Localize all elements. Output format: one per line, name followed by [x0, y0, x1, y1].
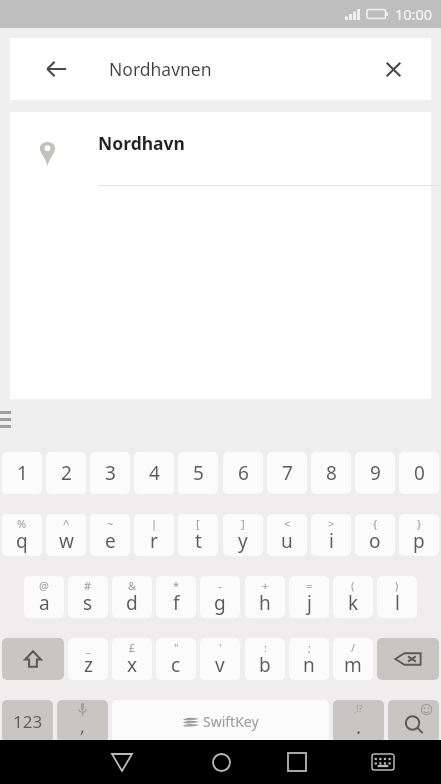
- button[interactable]: {: [355, 514, 395, 556]
- button[interactable]: Voice input: [57, 700, 108, 742]
- staticText: }: [417, 516, 422, 531]
- button[interactable]: %: [2, 514, 42, 556]
- staticText: ~: [107, 516, 114, 531]
- staticText: >: [328, 516, 335, 531]
- button[interactable]: }: [399, 514, 439, 556]
- button[interactable]: -: [200, 576, 240, 618]
- staticText: %: [17, 516, 27, 531]
- staticText: Nordhavn: [98, 131, 185, 155]
- staticText: +: [262, 578, 269, 593]
- staticText: h: [259, 590, 271, 616]
- staticText: ,: [80, 714, 85, 739]
- staticText: 5: [193, 460, 204, 486]
- button[interactable]: Search: [388, 700, 439, 742]
- staticText: 2: [61, 460, 72, 486]
- button[interactable]: ": [156, 638, 196, 680]
- button[interactable]: 4: [134, 452, 174, 494]
- staticText: z: [84, 652, 93, 678]
- button[interactable]: [: [178, 514, 218, 556]
- button[interactable]: Switch keyboard: [361, 740, 405, 784]
- staticText: .: [356, 714, 362, 740]
- button[interactable]: 5: [178, 452, 218, 494]
- button[interactable]: ^: [46, 514, 86, 556]
- button[interactable]: 2: [46, 452, 86, 494]
- staticText: v: [215, 652, 225, 678]
- button[interactable]: :: [245, 638, 285, 680]
- staticText: m: [344, 652, 362, 678]
- button[interactable]: Back: [32, 45, 80, 93]
- staticText: =: [306, 578, 313, 593]
- button[interactable]: Recents: [275, 740, 319, 784]
- button[interactable]: >: [311, 514, 351, 556]
- staticText: y: [238, 528, 248, 554]
- button[interactable]: ): [377, 576, 417, 618]
- button[interactable]: Home: [199, 740, 243, 784]
- staticText: <: [284, 516, 291, 531]
- staticText: k: [348, 590, 359, 616]
- staticText: :: [264, 640, 267, 655]
- staticText: i: [329, 528, 334, 554]
- button[interactable]: (: [333, 576, 373, 618]
- button[interactable]: |: [134, 514, 174, 556]
- staticText: s: [83, 590, 93, 616]
- staticText: &: [128, 578, 137, 593]
- staticText: w: [59, 528, 74, 554]
- button[interactable]: ¸!?: [333, 700, 384, 742]
- staticText: [: [196, 516, 200, 531]
- button[interactable]: +: [245, 576, 285, 618]
- button[interactable]: 1: [2, 452, 42, 494]
- staticText: o: [369, 528, 381, 554]
- button[interactable]: ;: [289, 638, 329, 680]
- button[interactable]: £: [112, 638, 152, 680]
- button[interactable]: 6: [223, 452, 263, 494]
- button[interactable]: 0: [399, 452, 439, 494]
- button[interactable]: Space: [112, 700, 329, 742]
- button[interactable]: #: [68, 576, 108, 618]
- staticText: 3: [105, 460, 116, 486]
- button[interactable]: /: [333, 638, 373, 680]
- staticText: -: [218, 578, 222, 593]
- staticText: ': [219, 640, 222, 655]
- button[interactable]: ]: [223, 514, 263, 556]
- button[interactable]: Nordhavn: [10, 112, 431, 186]
- button[interactable]: 7: [267, 452, 307, 494]
- staticText: 7: [282, 460, 293, 486]
- button[interactable]: _: [68, 638, 108, 680]
- button[interactable]: &: [112, 576, 152, 618]
- button[interactable]: 123: [2, 700, 53, 742]
- button[interactable]: ~: [90, 514, 130, 556]
- button[interactable]: Back: [100, 740, 144, 784]
- staticText: a: [39, 590, 50, 616]
- staticText: q: [16, 528, 28, 554]
- staticText: ": [174, 640, 179, 655]
- staticText: {: [373, 516, 378, 531]
- staticText: c: [171, 652, 181, 678]
- staticText: #: [84, 578, 92, 593]
- staticText: t: [195, 528, 202, 554]
- staticText: x: [127, 652, 138, 678]
- staticText: 10:00: [395, 4, 433, 24]
- button[interactable]: 9: [355, 452, 395, 494]
- button[interactable]: 8: [311, 452, 351, 494]
- staticText: @: [39, 578, 49, 593]
- staticText: 123: [13, 710, 43, 733]
- staticText: ;: [308, 640, 311, 655]
- button[interactable]: ': [200, 638, 240, 680]
- button[interactable]: @: [24, 576, 64, 618]
- staticText: p: [413, 528, 425, 554]
- button[interactable]: <: [267, 514, 307, 556]
- staticText: f: [173, 590, 180, 616]
- staticText: ): [395, 578, 399, 593]
- button[interactable]: Clear: [371, 47, 415, 91]
- staticText: g: [214, 590, 226, 616]
- staticText: (: [351, 578, 355, 593]
- button[interactable]: =: [289, 576, 329, 618]
- button[interactable]: 3: [90, 452, 130, 494]
- staticText: Nordhavnen: [109, 57, 212, 81]
- button[interactable]: *: [156, 576, 196, 618]
- button[interactable]: Shift: [2, 638, 64, 680]
- staticText: 4: [149, 460, 160, 486]
- staticText: SwiftKey: [203, 712, 259, 731]
- button[interactable]: Backspace: [377, 638, 439, 680]
- staticText: l: [395, 590, 400, 616]
